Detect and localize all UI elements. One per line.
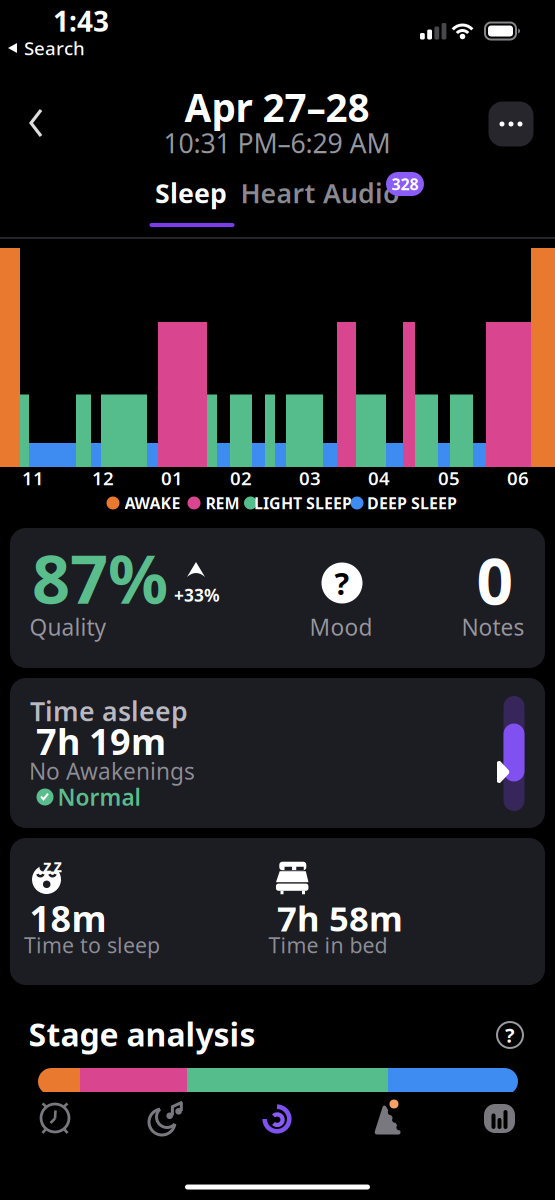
button[interactable]: Audio	[323, 175, 399, 211]
staticText: z	[53, 854, 62, 877]
staticText: ?	[334, 563, 349, 603]
button[interactable]	[38, 1101, 72, 1135]
staticText: Heart	[240, 175, 315, 211]
staticText: Time in bed	[268, 931, 387, 959]
button[interactable]	[143, 1098, 187, 1142]
staticText: AWAKE	[124, 492, 180, 514]
staticText: DEEP SLEEP	[367, 492, 457, 514]
staticText: Apr 27–28	[184, 81, 369, 133]
staticText: 7h 19m	[36, 717, 166, 765]
staticText: 1:43	[53, 2, 109, 40]
staticText: Time asleep	[30, 693, 188, 729]
staticText: Normal	[57, 782, 140, 812]
button[interactable]	[29, 108, 49, 140]
button[interactable]	[484, 1104, 514, 1133]
button[interactable]: ?	[497, 1022, 523, 1048]
staticText: 87%	[32, 534, 168, 622]
staticText: Notes	[461, 612, 524, 642]
staticText: ?	[505, 1022, 515, 1048]
button[interactable]	[372, 1103, 403, 1135]
staticText: 06	[507, 466, 529, 490]
staticText: 12	[92, 466, 114, 490]
staticText: 18m	[29, 894, 106, 942]
staticText: Quality	[29, 612, 106, 642]
staticText: REM	[205, 492, 239, 514]
staticText: z	[43, 854, 52, 877]
staticText: Stage analysis	[28, 1013, 255, 1055]
staticText: No Awakenings	[29, 756, 195, 786]
staticText: LIGHT SLEEP	[254, 492, 352, 514]
staticText: 328	[391, 173, 418, 195]
button[interactable]: Heart	[240, 175, 315, 211]
button[interactable]: ?	[321, 562, 362, 603]
staticText: 04	[368, 466, 390, 490]
staticText: 11	[22, 466, 44, 490]
button[interactable]	[260, 1102, 294, 1136]
staticText: Audio	[323, 175, 399, 211]
button[interactable]	[488, 101, 533, 146]
button[interactable]: Sleep	[155, 175, 227, 211]
staticText: 05	[438, 466, 460, 490]
staticText: Time to sleep	[24, 931, 160, 959]
staticText: +33%	[174, 583, 220, 606]
staticText: 0	[476, 537, 513, 622]
staticText: 01	[161, 466, 183, 490]
staticText: 02	[230, 466, 252, 490]
staticText: Mood	[309, 612, 372, 642]
staticText: Sleep	[155, 175, 227, 211]
staticText: 7h 58m	[277, 895, 403, 941]
staticText: 03	[299, 466, 321, 490]
staticText: 10:31 PM–6:29 AM	[163, 125, 390, 161]
staticText: Search	[24, 36, 85, 60]
